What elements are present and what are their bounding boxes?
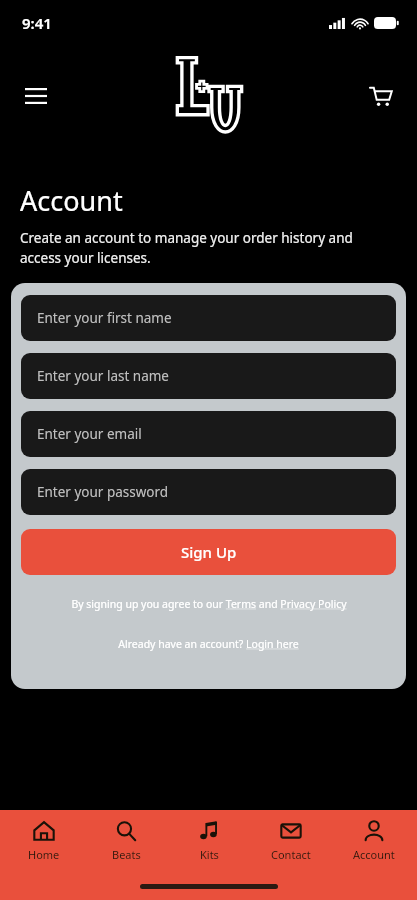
button[interactable]: Menu [14, 74, 58, 118]
button[interactable]: Enter your first name [21, 295, 396, 341]
staticText: Kits [200, 847, 219, 862]
staticText: Enter your last name [37, 367, 169, 385]
button[interactable]: Enter your email [21, 411, 396, 457]
staticText: Enter your first name [37, 309, 172, 327]
staticText: Enter your password [37, 483, 169, 501]
staticText: Already have an account? Login here [118, 637, 299, 651]
button[interactable]: By signing up you agree to our Terms and… [21, 597, 396, 611]
staticText: 9:41 [22, 13, 52, 33]
button[interactable]: Already have an account? Login here [21, 637, 396, 651]
staticText: Contact [271, 847, 311, 862]
button[interactable]: Home [5, 820, 83, 862]
staticText: By signing up you agree to our Terms and… [71, 597, 347, 611]
staticText: Beats [112, 847, 141, 862]
button[interactable]: Beats [87, 820, 165, 862]
staticText: Account [20, 182, 123, 219]
staticText: Enter your email [37, 425, 142, 443]
button[interactable]: Contact [252, 820, 330, 862]
staticText: Account [353, 847, 395, 862]
button[interactable]: Cart [359, 74, 403, 118]
button[interactable]: Enter your password [21, 469, 396, 515]
button[interactable]: Sign Up [21, 529, 396, 575]
staticText: Create an account to manage your order h… [20, 229, 397, 267]
staticText: Sign Up [181, 542, 237, 562]
staticText: Home [28, 847, 60, 862]
button[interactable]: Kits [170, 820, 248, 862]
button[interactable]: Enter your last name [21, 353, 396, 399]
button[interactable]: Account [335, 820, 413, 862]
